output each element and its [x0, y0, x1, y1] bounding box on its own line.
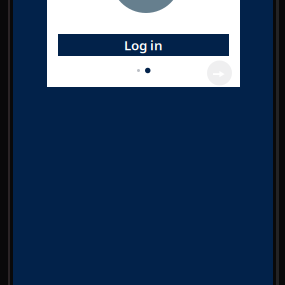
button[interactable]: Next [207, 60, 232, 85]
button[interactable]: Log in [58, 34, 229, 56]
staticText: Log in [124, 36, 163, 54]
